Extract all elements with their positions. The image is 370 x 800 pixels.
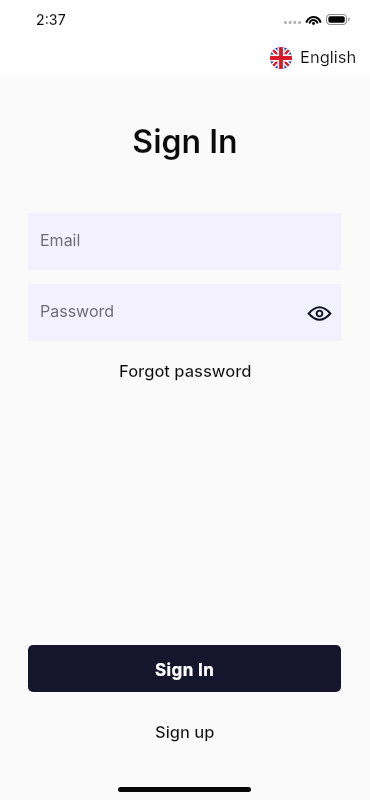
staticText: Forgot password (119, 361, 252, 381)
button[interactable]: Sign In (28, 645, 341, 692)
button[interactable]: Email (28, 213, 341, 270)
button[interactable]: Sign up (0, 720, 370, 744)
button[interactable]: English (270, 47, 357, 69)
button[interactable]: Forgot password (0, 359, 370, 383)
button[interactable]: Password (28, 284, 341, 341)
staticText: Sign up (155, 722, 215, 742)
staticText: Email (40, 230, 81, 249)
staticText: Sign In (0, 122, 370, 161)
staticText: English (300, 47, 357, 67)
staticText: Sign In (155, 660, 215, 681)
staticText: Password (40, 301, 115, 320)
button[interactable]: Show password (304, 298, 334, 328)
staticText: 2:37 (36, 11, 66, 28)
